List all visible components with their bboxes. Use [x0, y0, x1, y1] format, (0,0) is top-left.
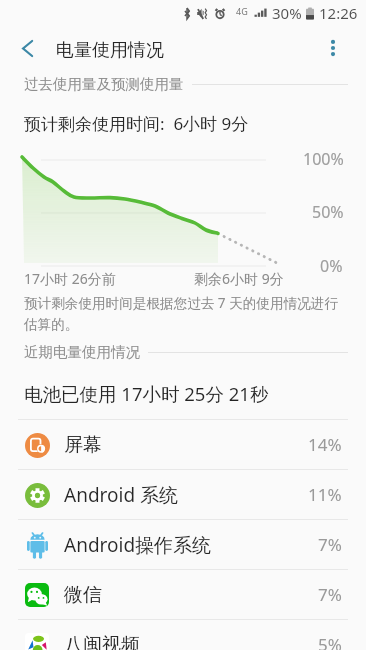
- staticText: 近期电量使用情况: [24, 343, 140, 361]
- staticText: 剩余6小时 9分: [194, 269, 284, 288]
- staticText: 4G: [236, 5, 248, 17]
- staticText: 预计剩余使用时间: 6小时 9分: [24, 112, 249, 135]
- button[interactable]: More options: [311, 26, 355, 70]
- staticText: 八闽视频: [64, 633, 140, 650]
- staticText: 7%: [318, 583, 342, 606]
- button[interactable]: Back: [5, 26, 49, 70]
- staticText: 屏幕: [64, 433, 102, 457]
- staticText: 50%: [312, 201, 344, 223]
- staticText: 17小时 26分前: [24, 269, 116, 288]
- staticText: 过去使用量及预测使用量: [24, 75, 184, 93]
- button[interactable]: 屏幕: [0, 420, 366, 469]
- staticText: 30%: [272, 3, 302, 23]
- staticText: Android 系统: [64, 482, 179, 508]
- button[interactable]: 微信: [0, 570, 366, 619]
- staticText: 12:26: [319, 3, 358, 23]
- staticText: Android操作系统: [64, 532, 212, 558]
- staticText: 100%: [303, 148, 344, 170]
- button[interactable]: Android 系统: [0, 470, 366, 519]
- staticText: 14%: [308, 433, 342, 456]
- staticText: 电池已使用 17小时 25分 21秒: [24, 381, 269, 406]
- staticText: 0%: [320, 255, 343, 277]
- button[interactable]: 八闽视频: [0, 620, 366, 650]
- staticText: 电量使用情况: [56, 39, 164, 62]
- staticText: 预计剩余使用时间是根据您过去 7 天的使用情况进行 估算的。: [24, 293, 338, 333]
- staticText: 微信: [64, 583, 102, 607]
- staticText: 11%: [308, 483, 342, 506]
- staticText: 5%: [318, 633, 342, 650]
- staticText: 7%: [318, 533, 342, 556]
- button[interactable]: Android操作系统: [0, 520, 366, 569]
